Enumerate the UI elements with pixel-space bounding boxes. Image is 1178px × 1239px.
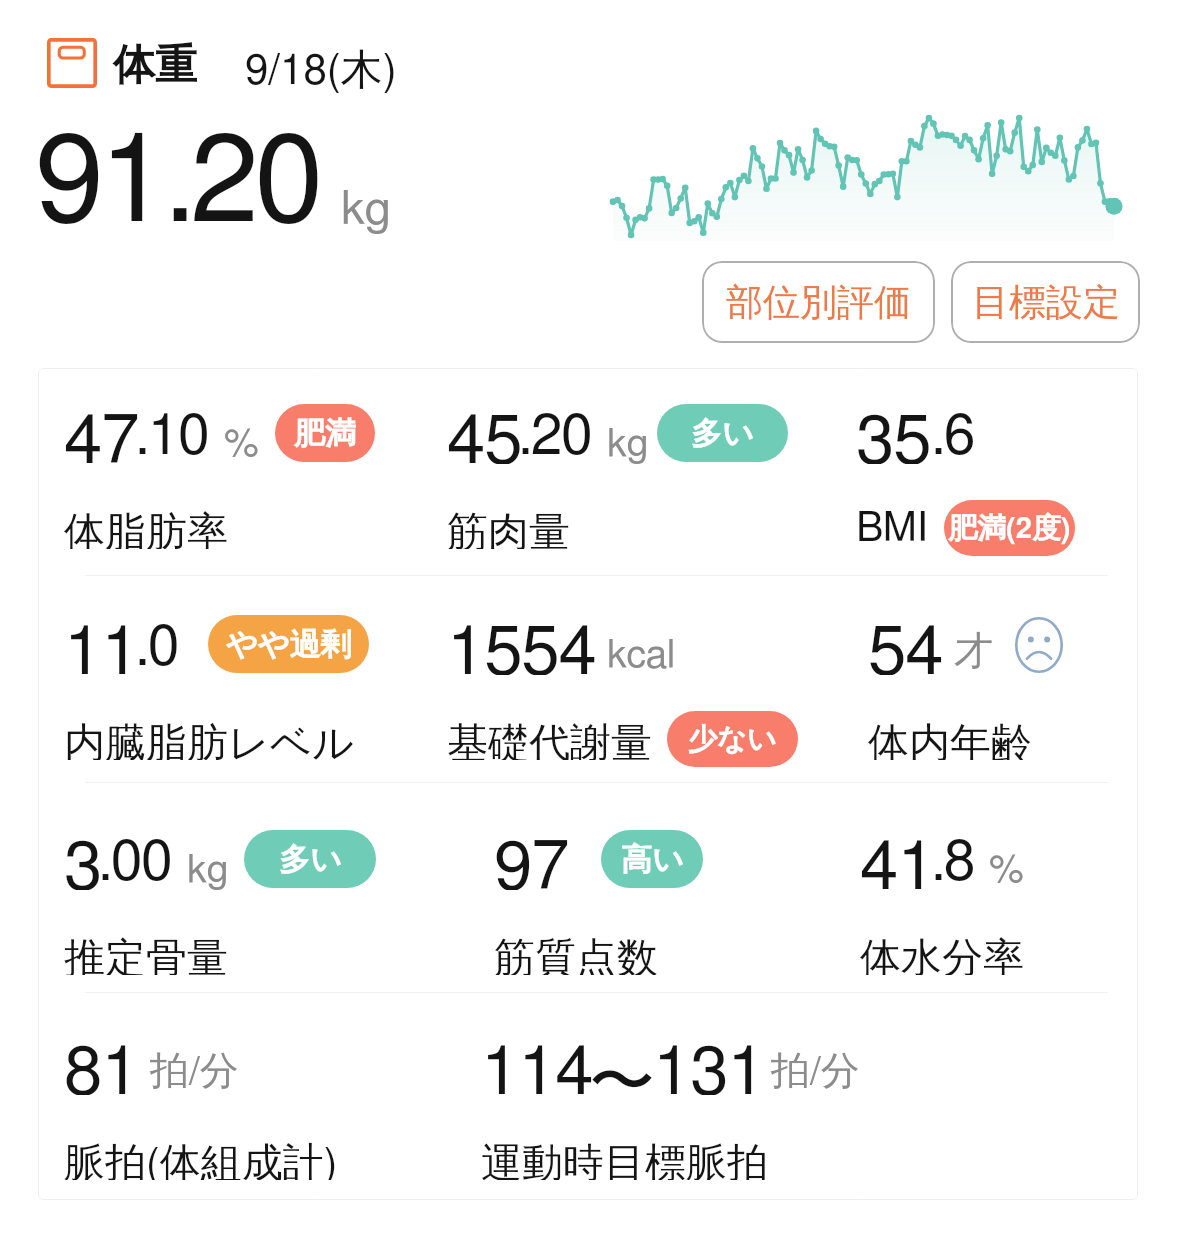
staticText: 3: [64, 834, 102, 890]
staticText: 1554: [447, 619, 596, 675]
staticText: 肥満: [294, 414, 356, 453]
staticText: 81: [64, 1039, 139, 1095]
button[interactable]: 高い: [601, 830, 703, 888]
button[interactable]: 多い: [244, 830, 376, 888]
staticText: 内臓脂肪レベル: [64, 718, 354, 760]
button[interactable]: 肥満: [275, 404, 375, 462]
staticText: kg: [341, 186, 391, 233]
staticText: kg: [187, 851, 229, 890]
button[interactable]: 部位別評価: [702, 261, 935, 343]
staticText: 体重: [113, 39, 197, 92]
other: Weight scale: [47, 38, 97, 88]
staticText: .6: [931, 408, 974, 464]
staticText: 筋質点数: [494, 933, 658, 975]
staticText: 〜: [589, 1040, 655, 1096]
staticText: kg: [607, 425, 649, 464]
button[interactable]: 肥満(2度): [944, 500, 1075, 556]
staticText: 多い: [279, 840, 342, 879]
staticText: 97: [494, 834, 569, 890]
staticText: 45: [447, 408, 522, 464]
button[interactable]: やや過剰: [208, 615, 369, 673]
staticText: やや過剰: [226, 625, 352, 664]
staticText: 基礎代謝量: [447, 718, 652, 760]
staticText: 11: [64, 619, 139, 675]
staticText: 体脂肪率: [64, 507, 228, 549]
staticText: 47: [64, 408, 139, 464]
staticText: 運動時目標脈拍: [481, 1138, 768, 1180]
staticText: 54: [868, 619, 943, 675]
staticText: 高い: [621, 840, 684, 879]
staticText: 35: [856, 408, 931, 464]
staticText: 体内年齢: [868, 718, 1032, 760]
staticText: %: [989, 851, 1024, 890]
staticText: BMI: [856, 508, 929, 549]
staticText: 筋肉量: [447, 507, 570, 549]
staticText: .20: [518, 408, 592, 464]
staticText: %: [224, 425, 259, 464]
staticText: .00: [98, 834, 172, 890]
staticText: 9/18(木): [245, 44, 397, 97]
staticText: .10: [135, 408, 209, 464]
staticText: 体水分率: [860, 933, 1024, 975]
staticText: 才: [954, 626, 993, 675]
staticText: 拍/分: [150, 1046, 239, 1095]
staticText: 脈拍(体組成計): [64, 1138, 338, 1180]
staticText: 拍/分: [771, 1046, 860, 1095]
staticText: 少ない: [688, 721, 777, 758]
staticText: 41: [860, 834, 935, 890]
staticText: .8: [931, 834, 974, 890]
staticText: 部位別評価: [726, 279, 911, 326]
staticText: 肥満(2度): [948, 510, 1071, 547]
staticText: 推定骨量: [64, 933, 228, 975]
button[interactable]: 多い: [657, 404, 788, 462]
staticText: 目標設定: [972, 279, 1120, 326]
other: Body age rating: [1015, 617, 1063, 673]
staticText: 131: [653, 1039, 765, 1095]
staticText: 114: [481, 1039, 593, 1095]
button[interactable]: 少ない: [667, 711, 798, 767]
button[interactable]: 目標設定: [951, 261, 1140, 343]
staticText: kcal: [607, 636, 676, 675]
staticText: .0: [135, 619, 178, 675]
staticText: 91.20: [35, 122, 319, 246]
staticText: 多い: [691, 414, 754, 453]
